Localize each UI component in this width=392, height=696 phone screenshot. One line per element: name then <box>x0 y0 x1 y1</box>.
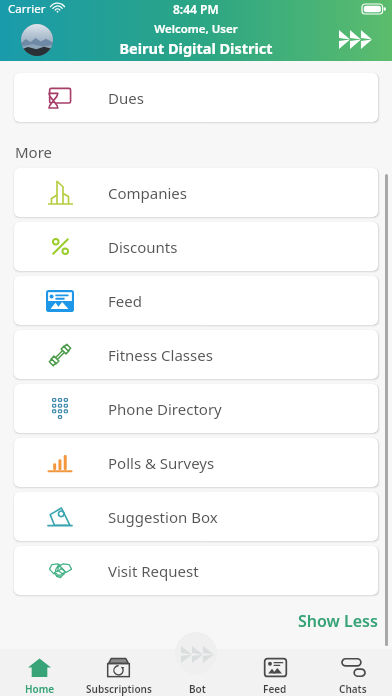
staticText: Show Less <box>298 610 378 632</box>
staticText: 8:44 PM <box>173 1 219 17</box>
button[interactable]: Home <box>0 649 79 696</box>
button[interactable]: Suggestion Box <box>14 492 378 541</box>
staticText: Feed <box>263 682 287 696</box>
staticText: Suggestion Box <box>108 507 218 527</box>
button[interactable]: Phone Directory <box>14 384 378 433</box>
staticText: Fitness Classes <box>108 345 213 365</box>
button[interactable]: Chats <box>314 649 392 696</box>
staticText: Polls & Surveys <box>108 453 215 473</box>
button[interactable]: Discounts <box>14 222 378 271</box>
staticText: Dues <box>108 88 144 108</box>
staticText: Bot <box>189 682 206 696</box>
staticText: Subscriptions <box>86 682 152 696</box>
button[interactable]: Profile <box>21 24 53 56</box>
button[interactable]: Bot <box>158 649 236 696</box>
staticText: Welcome, User <box>154 21 238 37</box>
staticText: Chats <box>339 682 367 696</box>
button[interactable]: Feed <box>236 649 314 696</box>
button[interactable]: Open menu <box>339 30 372 49</box>
staticText: Visit Request <box>108 561 199 581</box>
staticText: Beirut Digital District <box>119 38 273 58</box>
staticText: Carrier <box>8 1 46 17</box>
button[interactable]: Visit Request <box>14 546 378 595</box>
staticText: More <box>15 142 53 162</box>
staticText: Companies <box>108 183 188 203</box>
button[interactable]: Fitness Classes <box>14 330 378 379</box>
staticText: Phone Directory <box>108 399 222 419</box>
button[interactable]: Show Less <box>284 606 392 636</box>
staticText: Feed <box>108 291 142 311</box>
button[interactable]: Dues <box>14 73 378 122</box>
staticText: Home <box>25 682 55 696</box>
staticText: Discounts <box>108 237 178 257</box>
button[interactable]: Polls & Surveys <box>14 438 378 487</box>
button[interactable]: Companies <box>14 168 378 217</box>
button[interactable]: Subscriptions <box>79 649 158 696</box>
button[interactable]: Feed <box>14 276 378 325</box>
